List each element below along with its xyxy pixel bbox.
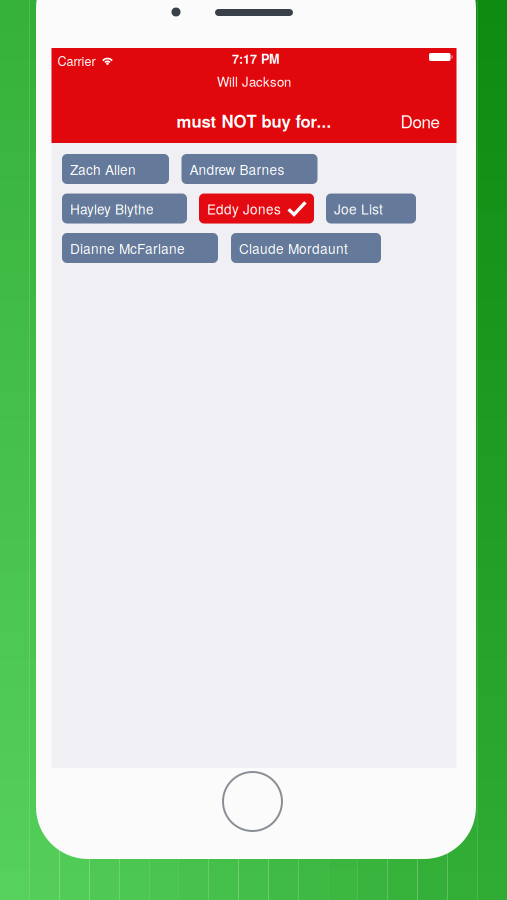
staticText: Dianne McFarlane bbox=[70, 238, 185, 258]
staticText: Zach Allen bbox=[70, 159, 136, 179]
button[interactable]: Dianne McFarlane bbox=[62, 233, 218, 263]
button[interactable]: Andrew Barnes bbox=[181, 154, 317, 184]
staticText: Hayley Blythe bbox=[70, 199, 154, 218]
staticText: must NOT buy for... bbox=[176, 109, 331, 133]
staticText: Andrew Barnes bbox=[189, 159, 284, 179]
button[interactable]: Eddy Jones bbox=[199, 193, 314, 223]
button[interactable]: Claude Mordaunt bbox=[231, 233, 381, 263]
staticText: Done bbox=[400, 109, 439, 133]
staticText: Carrier bbox=[57, 51, 95, 70]
button[interactable]: Hayley Blythe bbox=[62, 193, 187, 223]
button[interactable]: Zach Allen bbox=[62, 154, 169, 184]
staticText: Joe List bbox=[334, 199, 383, 218]
staticText: Eddy Jones bbox=[207, 199, 281, 218]
button[interactable]: Joe List bbox=[326, 193, 416, 223]
staticText: Claude Mordaunt bbox=[239, 238, 348, 258]
button[interactable]: Done bbox=[391, 104, 448, 138]
staticText: 7:17 PM bbox=[232, 49, 280, 67]
staticText: Will Jackson bbox=[217, 71, 291, 90]
